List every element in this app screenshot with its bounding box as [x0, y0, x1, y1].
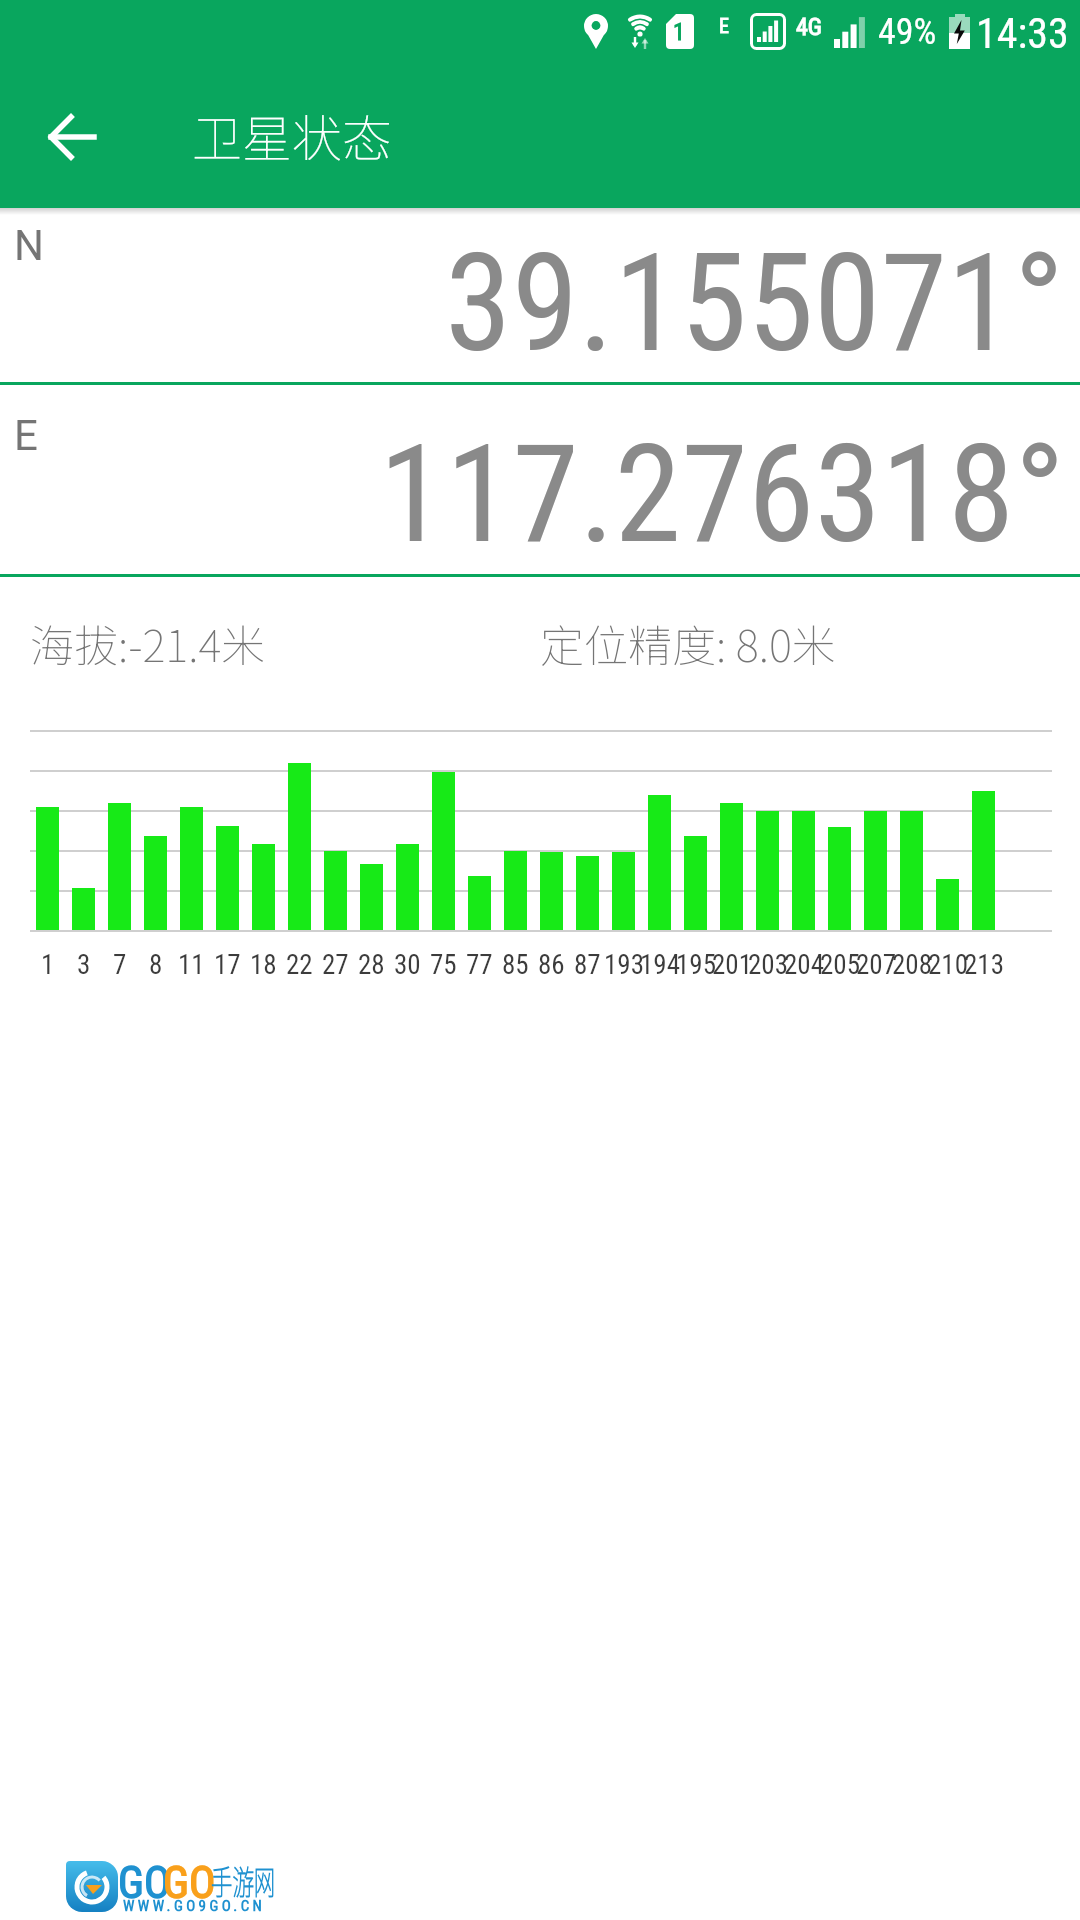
staticText: 27: [322, 949, 349, 981]
staticText: 17: [214, 949, 241, 981]
staticText: N: [14, 221, 44, 270]
staticText: 7: [113, 949, 127, 981]
staticText: 205: [820, 949, 860, 981]
staticText: 39.155071°: [445, 225, 1065, 383]
staticText: 203: [748, 949, 788, 981]
staticText: 204: [784, 949, 824, 981]
staticText: 87: [574, 949, 601, 981]
staticText: 18: [250, 949, 277, 981]
staticText: 195: [676, 949, 716, 981]
staticText: 3: [77, 949, 91, 981]
staticText: 207: [856, 949, 896, 981]
staticText: 卫星状态: [192, 99, 392, 171]
staticText: WWW.GO9GO.CN: [123, 1897, 266, 1915]
staticText: 210: [928, 949, 968, 981]
staticText: 194: [640, 949, 680, 981]
staticText: 手游网: [211, 1856, 275, 1905]
staticText: 77: [466, 949, 493, 981]
staticText: 1: [41, 949, 55, 981]
button[interactable]: [36, 101, 108, 173]
staticText: 213: [964, 949, 1004, 981]
staticText: 85: [502, 949, 529, 981]
staticText: 28: [358, 949, 385, 981]
staticText: 1: [673, 18, 685, 46]
staticText: GO: [163, 1857, 216, 1909]
button[interactable]: GO: [66, 1861, 281, 1913]
staticText: E: [14, 411, 38, 460]
staticText: GO: [118, 1857, 171, 1909]
staticText: 海拔:-21.4米: [30, 611, 266, 675]
staticText: 定位精度: 8.0米: [540, 611, 836, 675]
staticText: 117.276318°: [379, 416, 1065, 574]
staticText: 86: [538, 949, 565, 981]
staticText: 49%: [878, 11, 937, 53]
staticText: 201: [712, 949, 752, 981]
staticText: 208: [892, 949, 932, 981]
staticText: 8: [149, 949, 163, 981]
staticText: 30: [394, 949, 421, 981]
staticText: 14:33: [976, 9, 1069, 58]
staticText: 193: [604, 949, 644, 981]
staticText: E: [719, 14, 729, 37]
staticText: 4G: [796, 13, 823, 41]
staticText: 11: [178, 949, 205, 981]
staticText: 22: [286, 949, 313, 981]
staticText: 75: [430, 949, 457, 981]
